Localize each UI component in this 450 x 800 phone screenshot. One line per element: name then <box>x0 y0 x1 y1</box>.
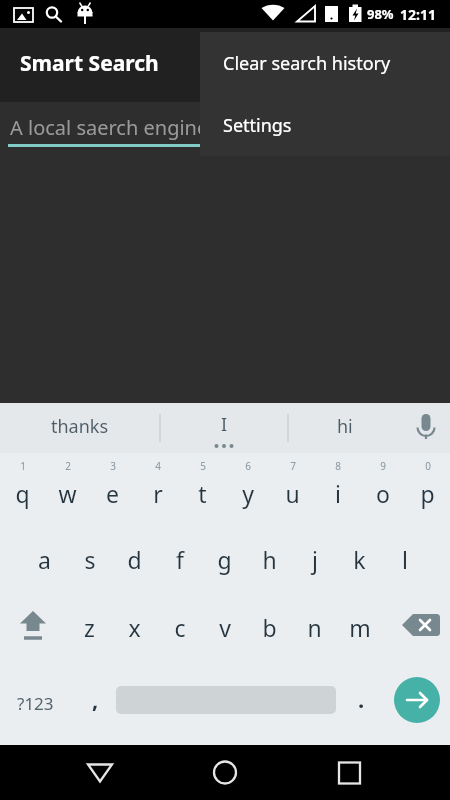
button[interactable]: I <box>160 403 288 453</box>
button[interactable]: 3 <box>90 453 135 525</box>
button[interactable]: Recents <box>325 745 375 800</box>
staticText: q <box>15 478 30 509</box>
staticText: A local saerch engine <box>10 114 209 141</box>
button[interactable]: s <box>67 525 112 593</box>
staticText: m <box>349 612 371 643</box>
button[interactable]: 5 <box>180 453 225 525</box>
button[interactable]: 4 <box>135 453 180 525</box>
staticText: Clear search history <box>223 51 391 76</box>
button[interactable]: k <box>337 525 382 593</box>
button[interactable]: . <box>340 661 382 745</box>
staticText: hi <box>337 414 353 439</box>
staticText: 0 <box>425 459 431 473</box>
button[interactable]: 7 <box>270 453 315 525</box>
staticText: 12:11 <box>400 5 436 24</box>
staticText: v <box>219 612 231 643</box>
button[interactable]: , <box>74 661 116 745</box>
staticText: b <box>262 612 277 643</box>
button[interactable]: v <box>202 593 247 661</box>
staticText: o <box>376 478 390 509</box>
staticText: Settings <box>223 113 292 138</box>
button[interactable]: 6 <box>225 453 270 525</box>
staticText: g <box>217 544 232 575</box>
staticText: s <box>84 544 96 575</box>
staticText: k <box>353 544 366 575</box>
button[interactable]: j <box>292 525 337 593</box>
button[interactable]: 8 <box>315 453 360 525</box>
button[interactable]: d <box>112 525 157 593</box>
button[interactable]: Voice input <box>402 403 450 453</box>
staticText: , <box>92 684 99 714</box>
staticText: a <box>38 544 51 575</box>
button[interactable]: Clear search history <box>200 32 450 94</box>
staticText: 6 <box>245 459 251 473</box>
button[interactable]: n <box>292 593 337 661</box>
button[interactable]: z <box>67 593 112 661</box>
button[interactable]: a <box>22 525 67 593</box>
button[interactable]: ?123 <box>0 661 70 745</box>
button[interactable]: f <box>157 525 202 593</box>
staticText: 9 <box>380 459 386 473</box>
staticText: 2 <box>65 459 71 473</box>
staticText: x <box>128 612 141 643</box>
staticText: t <box>198 478 207 509</box>
staticText: z <box>84 612 95 643</box>
staticText: i <box>335 478 341 509</box>
button[interactable]: hi <box>288 403 402 453</box>
button[interactable]: Home <box>200 745 250 800</box>
staticText: Smart Search <box>20 49 159 78</box>
button[interactable]: m <box>337 593 382 661</box>
button[interactable]: Space <box>116 661 336 745</box>
staticText: h <box>262 544 277 575</box>
staticText: r <box>153 478 163 509</box>
staticText: 1 <box>20 459 26 473</box>
staticText: 7 <box>290 459 296 473</box>
staticText: 4 <box>155 459 161 473</box>
button[interactable]: 2 <box>45 453 90 525</box>
staticText: y <box>242 478 254 509</box>
staticText: 8 <box>335 459 341 473</box>
staticText: d <box>127 544 142 575</box>
button[interactable]: g <box>202 525 247 593</box>
button[interactable]: Backspace <box>384 593 450 661</box>
staticText: I <box>221 412 228 437</box>
staticText: w <box>58 478 77 509</box>
staticText: l <box>402 544 408 575</box>
staticText: 5 <box>200 459 206 473</box>
button[interactable]: 0 <box>405 453 450 525</box>
staticText: u <box>285 478 300 509</box>
button[interactable]: Back <box>75 745 125 800</box>
button[interactable]: Enter <box>386 661 450 745</box>
staticText: f <box>176 544 184 575</box>
button[interactable]: c <box>157 593 202 661</box>
staticText: p <box>420 478 435 509</box>
staticText: n <box>307 612 322 643</box>
staticText: c <box>174 612 186 643</box>
staticText: 3 <box>110 459 116 473</box>
button[interactable]: Settings <box>200 94 450 156</box>
staticText: ?123 <box>17 692 54 715</box>
button[interactable]: b <box>247 593 292 661</box>
button[interactable]: 1 <box>0 453 45 525</box>
button[interactable]: Shift <box>0 593 66 661</box>
staticText: thanks <box>51 414 109 439</box>
staticText: 98% <box>367 5 394 23</box>
button[interactable]: thanks <box>0 403 160 453</box>
button[interactable]: l <box>382 525 427 593</box>
button[interactable]: x <box>112 593 157 661</box>
button[interactable]: 9 <box>360 453 405 525</box>
staticText: . <box>358 684 365 714</box>
staticText: e <box>106 478 119 509</box>
button[interactable]: h <box>247 525 292 593</box>
staticText: j <box>312 544 318 575</box>
